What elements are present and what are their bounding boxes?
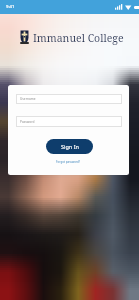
button[interactable]: Forgot password? xyxy=(56,160,81,164)
staticText: Password xyxy=(20,120,35,124)
other: Signal, wifi and battery status xyxy=(115,4,134,11)
staticText: 9:41 xyxy=(6,4,15,10)
staticText: Username xyxy=(20,97,36,101)
button[interactable]: Username xyxy=(16,94,122,104)
button[interactable]: Password xyxy=(16,116,122,127)
staticText: Immanuel College xyxy=(33,31,124,45)
staticText: Sign In xyxy=(61,143,79,150)
button[interactable]: Sign In xyxy=(46,139,93,154)
